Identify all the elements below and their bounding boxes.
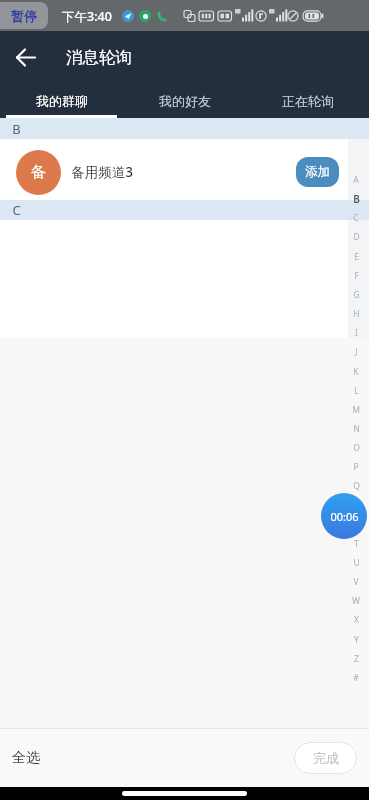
- staticText: W: [352, 595, 360, 607]
- button[interactable]: 全选: [0, 749, 40, 767]
- button[interactable]: 我的群聊: [0, 84, 123, 118]
- staticText: E: [354, 251, 359, 263]
- button[interactable]: 我的好友: [123, 84, 246, 118]
- staticText: 添加: [305, 164, 330, 180]
- staticText: C: [12, 201, 21, 219]
- staticText: 00:06: [330, 509, 359, 524]
- staticText: 下午3:40: [62, 8, 112, 25]
- staticText: H: [353, 308, 360, 320]
- staticText: A: [353, 174, 359, 186]
- staticText: S: [354, 519, 359, 531]
- staticText: 备用频道3: [71, 163, 133, 181]
- staticText: T: [354, 538, 359, 550]
- staticText: #: [353, 672, 359, 684]
- button[interactable]: 完成: [294, 742, 357, 774]
- staticText: X: [354, 614, 359, 626]
- staticText: O: [353, 442, 360, 454]
- staticText: F: [354, 270, 359, 282]
- staticText: 我的好友: [159, 93, 211, 109]
- staticText: M: [352, 404, 360, 416]
- staticText: Z: [354, 653, 359, 665]
- staticText: V: [353, 576, 359, 588]
- staticText: 暂停: [11, 8, 37, 24]
- staticText: B: [12, 120, 21, 138]
- staticText: 消息轮询: [66, 47, 132, 68]
- staticText: 完成: [313, 750, 339, 766]
- button[interactable]: [16, 47, 37, 68]
- staticText: Y: [354, 634, 359, 646]
- staticText: P: [353, 461, 359, 473]
- staticText: 我的群聊: [36, 93, 88, 109]
- staticText: L: [354, 385, 359, 397]
- button[interactable]: 正在轮询: [246, 84, 369, 118]
- staticText: K: [353, 366, 359, 378]
- staticText: Q: [353, 480, 360, 492]
- staticText: J: [355, 346, 358, 358]
- button[interactable]: 备: [0, 139, 348, 200]
- staticText: C: [353, 212, 359, 224]
- staticText: 正在轮询: [282, 93, 334, 109]
- staticText: U: [353, 557, 360, 569]
- staticText: D: [353, 231, 360, 243]
- button[interactable]: 00:06: [321, 493, 367, 539]
- staticText: 全选: [12, 749, 40, 767]
- staticText: B: [353, 192, 360, 206]
- staticText: N: [353, 423, 360, 435]
- button[interactable]: 添加: [296, 157, 339, 187]
- staticText: G: [353, 289, 360, 301]
- staticText: 备: [31, 163, 46, 182]
- staticText: I: [355, 327, 358, 339]
